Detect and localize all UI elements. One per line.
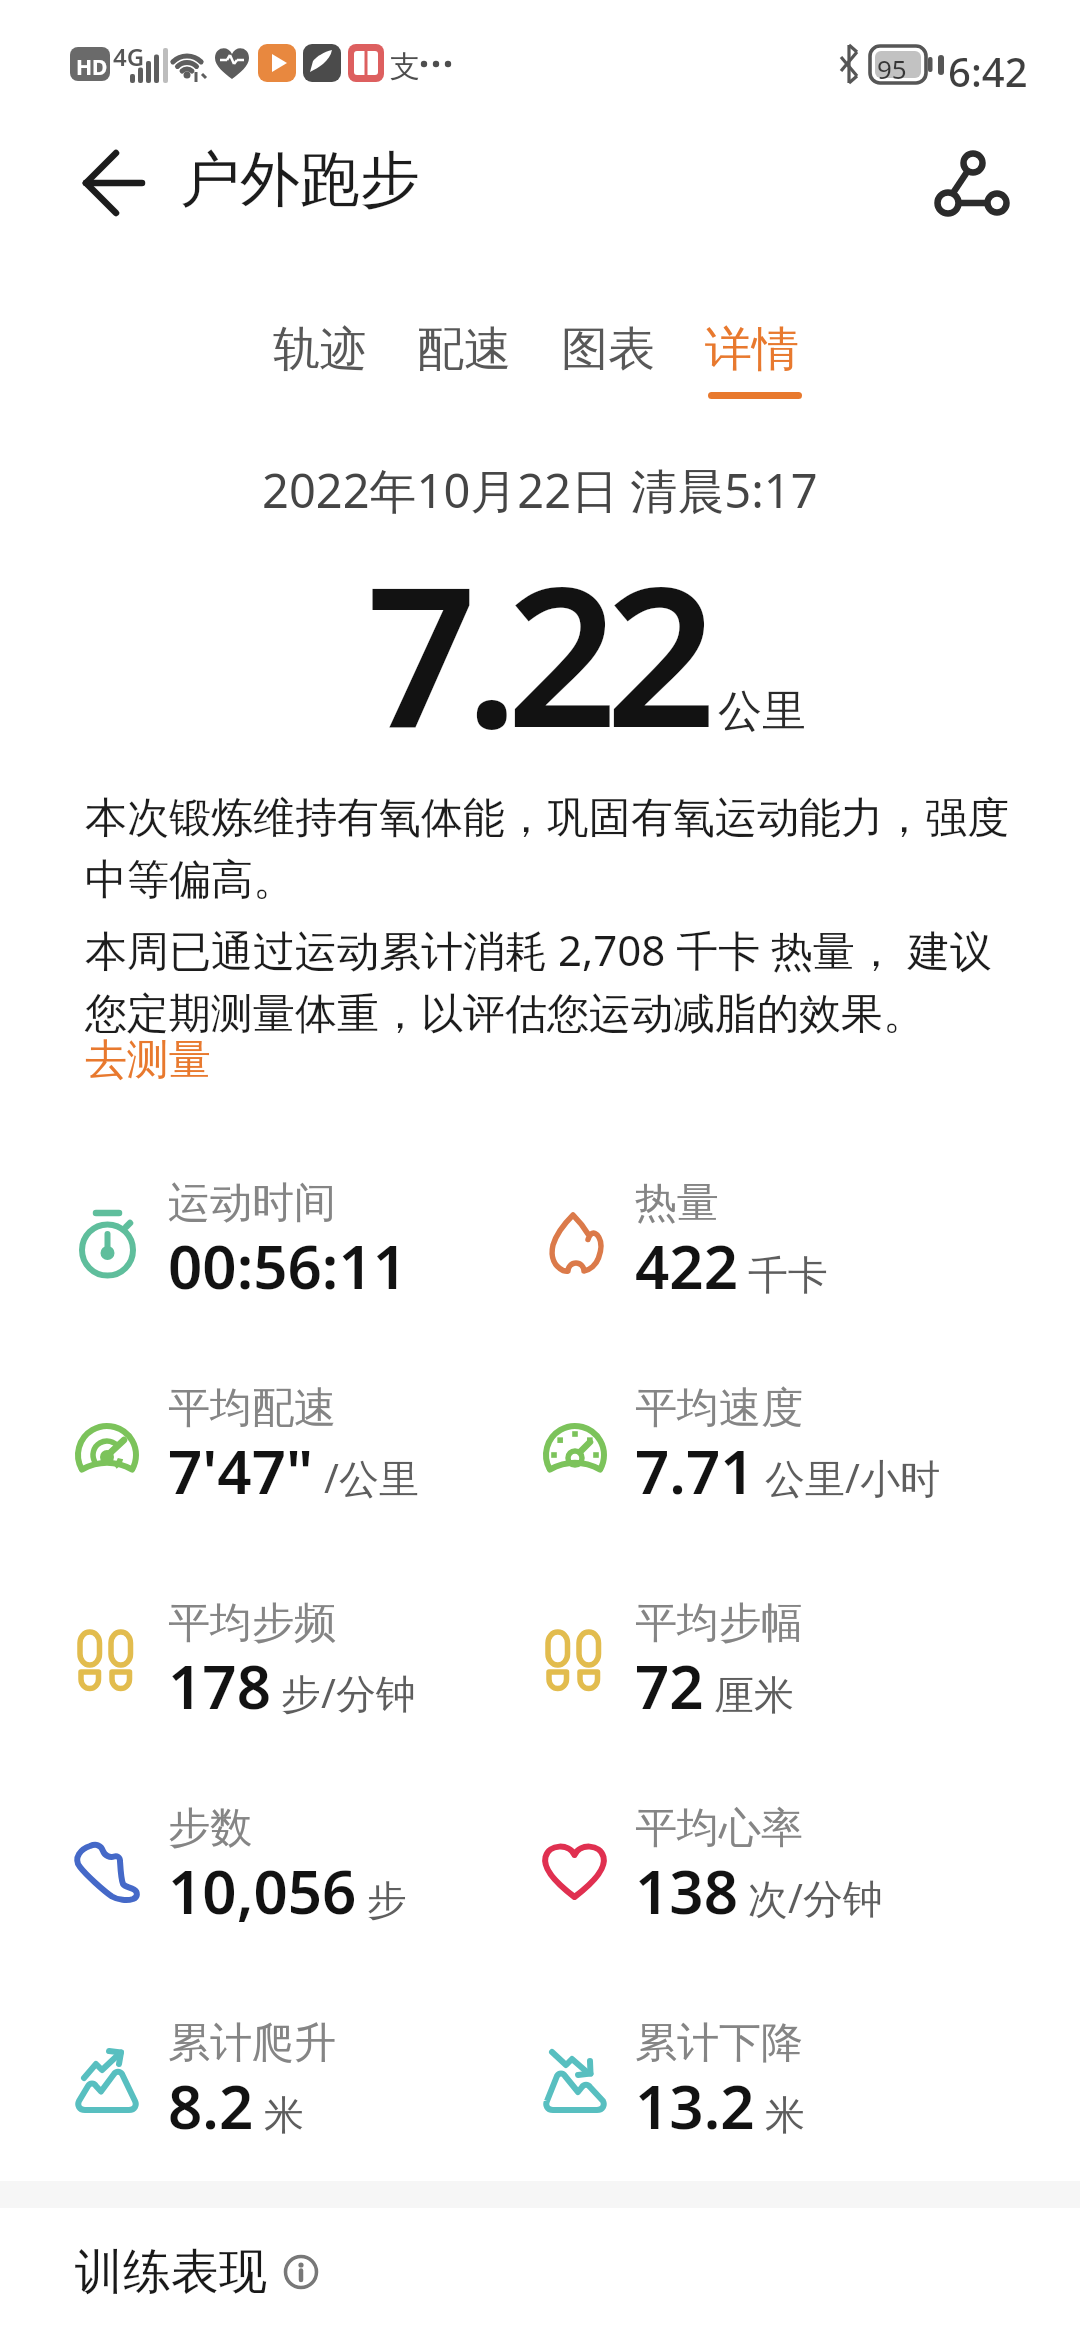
staticText: 千卡 (748, 1250, 828, 1300)
staticText: 72 (635, 1645, 704, 1727)
staticText: 公里 (718, 684, 806, 739)
staticText: 138 (635, 1850, 738, 1932)
staticText: 详情 (705, 320, 799, 379)
button[interactable]: 图表 (561, 320, 655, 379)
staticText: 步 (367, 1875, 407, 1925)
staticText: 配速 (417, 320, 511, 379)
button[interactable]: 详情 (705, 320, 799, 379)
staticText: 步数 (168, 1802, 252, 1855)
staticText: 步/分钟 (281, 1665, 416, 1720)
staticText: 7.71 (635, 1430, 755, 1512)
staticText: 2022年10月22日 清晨5:17 (262, 458, 818, 522)
staticText: 训练表现 (75, 2242, 267, 2302)
staticText: 平均配速 (168, 1382, 336, 1435)
staticText: 米 (264, 2090, 304, 2140)
staticText: 公里/小时 (765, 1450, 940, 1505)
staticText: 00:56:11 (168, 1225, 408, 1307)
staticText: 178 (168, 1645, 271, 1727)
button[interactable] (283, 2254, 319, 2290)
staticText: 平均步幅 (635, 1597, 803, 1650)
staticText: 6:42 (948, 44, 1028, 98)
staticText: 支 (390, 48, 420, 86)
button[interactable]: 轨迹 (273, 320, 367, 379)
staticText: /公里 (324, 1450, 419, 1505)
button[interactable] (80, 148, 150, 218)
staticText: 轨迹 (273, 320, 367, 379)
staticText: 95 (877, 51, 907, 86)
staticText: 13.2 (635, 2065, 755, 2147)
staticText: 本次锻炼维持有氧体能，巩固有氧运动能力，强度 中等偏高。 (85, 792, 1009, 907)
staticText: 累计爬升 (168, 2017, 336, 2070)
button[interactable]: 配速 (417, 320, 511, 379)
staticText: 运动时间 (168, 1177, 336, 1230)
staticText: 4G (113, 40, 145, 73)
staticText: HD (76, 53, 108, 82)
staticText: 7.22 (366, 520, 705, 784)
button[interactable]: 去测量 (85, 1034, 211, 1087)
staticText: 7'47" (168, 1430, 314, 1512)
staticText: 平均心率 (635, 1802, 803, 1855)
staticText: 厘米 (714, 1670, 794, 1720)
staticText: 户外跑步 (180, 142, 420, 218)
staticText: 次/分钟 (748, 1870, 883, 1925)
staticText: 本周已通过运动累计消耗 2,708 千卡 热量， 建议 您定期测量体重，以评估您… (85, 921, 993, 1041)
staticText: 去测量 (85, 1034, 211, 1087)
staticText: 平均步频 (168, 1597, 336, 1650)
staticText: 10,056 (168, 1850, 357, 1932)
staticText: 累计下降 (635, 2017, 803, 2070)
button[interactable] (936, 146, 1006, 216)
staticText: 热量 (635, 1177, 719, 1230)
staticText: 图表 (561, 320, 655, 379)
staticText: 米 (765, 2090, 805, 2140)
staticText: 8.2 (168, 2065, 254, 2147)
staticText: 平均速度 (635, 1382, 803, 1435)
staticText: 422 (635, 1225, 738, 1307)
